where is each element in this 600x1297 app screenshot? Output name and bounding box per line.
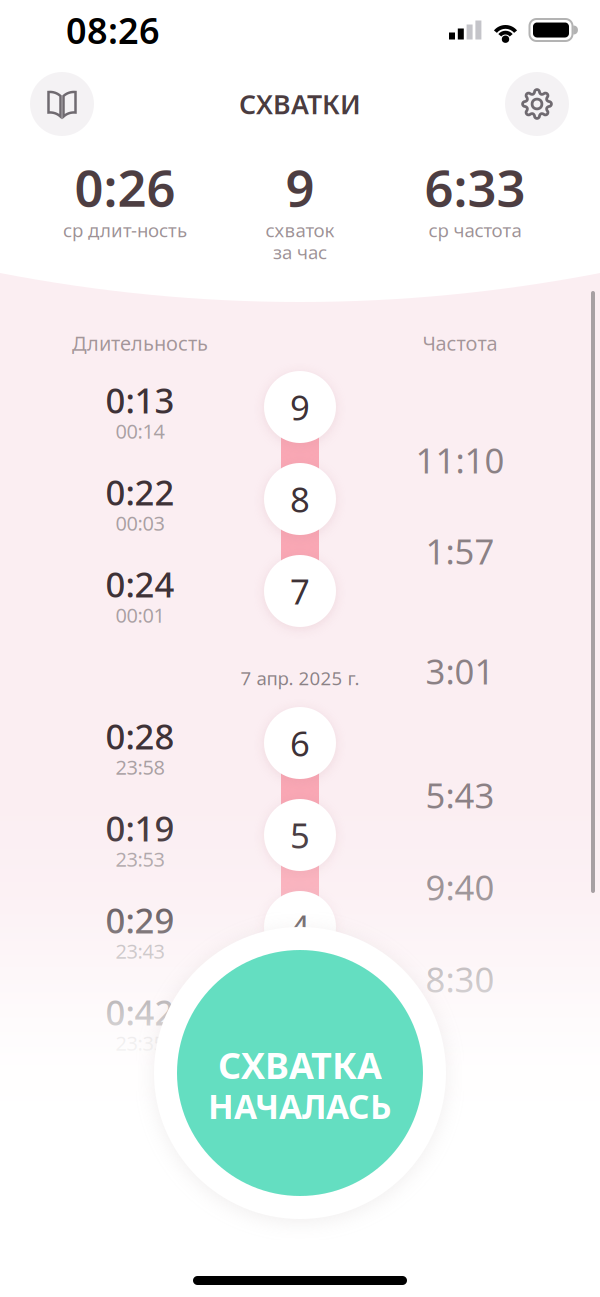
staticText: Длительность <box>72 330 208 356</box>
staticText: 0:28 <box>105 713 174 759</box>
staticText: НАЧАЛАСЬ <box>208 1084 392 1128</box>
staticText: 1:57 <box>425 528 494 574</box>
staticText: 0:29 <box>105 897 174 943</box>
staticText: 00:01 <box>115 602 164 628</box>
button[interactable]: СХВАТКА <box>154 927 446 1219</box>
staticText: СХВАТКА <box>218 1041 382 1089</box>
staticText: 6:33 <box>424 153 525 221</box>
staticText: 9 <box>285 153 314 221</box>
staticText: 9 <box>290 384 310 430</box>
staticText: 7 <box>290 568 310 614</box>
staticText: 0:24 <box>105 561 174 607</box>
staticText: 5:43 <box>425 772 494 818</box>
staticText: 11:10 <box>415 437 504 483</box>
staticText: 23:53 <box>115 846 164 872</box>
staticText: 0:22 <box>105 469 174 515</box>
staticText: ср частота <box>428 218 521 242</box>
staticText: 5 <box>290 812 310 858</box>
staticText: Частота <box>422 330 497 356</box>
staticText: 0:42 <box>105 989 174 1035</box>
staticText: 23:58 <box>115 754 164 780</box>
staticText: 00:14 <box>115 418 164 444</box>
staticText: 4 <box>290 904 310 950</box>
staticText: ср длит-ность <box>63 218 187 242</box>
staticText: 23:43 <box>115 938 164 964</box>
staticText: 0:19 <box>105 805 174 851</box>
staticText: 7 апр. 2025 г. <box>240 666 359 690</box>
staticText: 0:13 <box>105 377 174 423</box>
staticText: 6 <box>290 720 310 766</box>
staticText: 08:26 <box>66 6 160 54</box>
staticText: СХВАТКИ <box>239 86 361 122</box>
button[interactable]: Settings <box>505 72 569 136</box>
staticText: за час <box>273 240 327 264</box>
staticText: 9:40 <box>425 864 494 910</box>
staticText: 23:35 <box>115 1030 164 1056</box>
staticText: 8:30 <box>425 956 494 1002</box>
staticText: 0:26 <box>74 153 175 221</box>
staticText: 00:03 <box>115 510 164 536</box>
staticText: 3:01 <box>425 648 494 694</box>
button[interactable]: Guide <box>30 72 94 136</box>
staticText: 8 <box>290 476 310 522</box>
staticText: схваток <box>265 218 334 242</box>
